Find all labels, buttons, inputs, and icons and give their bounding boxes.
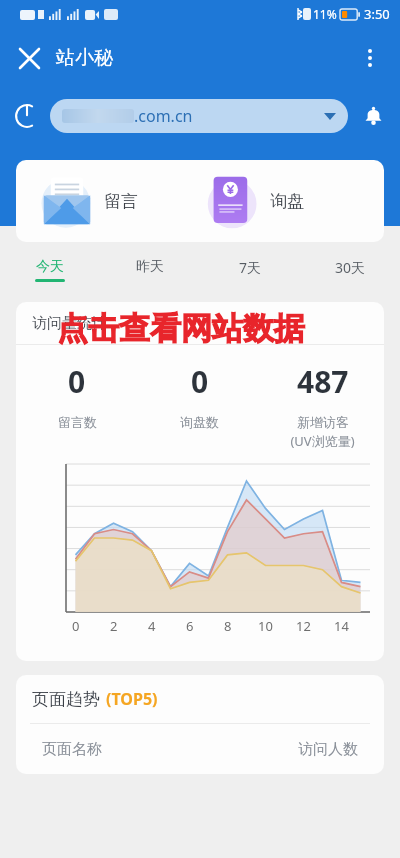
button[interactable]: Notifications [354,97,392,135]
staticText: 询盘数 [180,414,219,430]
button[interactable]: 询盘 [200,160,384,242]
button[interactable]: Close [6,35,52,81]
staticText: 2 [110,617,118,635]
staticText: 11% [313,6,337,22]
button[interactable]: 页面趋势 [16,675,384,774]
staticText: .com.cn [134,105,193,127]
staticText: 页面名称 [42,740,102,759]
button[interactable]: More options [348,36,392,80]
staticText: 今天 [36,258,64,276]
staticText: 7天 [239,258,262,277]
staticText: 页面趋势 [32,689,100,710]
staticText: 8 [224,617,232,635]
staticText: 0 [68,361,86,402]
staticText: 487 [297,361,349,402]
staticText: 访问量统计 [32,314,107,333]
staticText: 点击查看网站数据 [57,309,305,348]
staticText: 6 [186,617,194,635]
staticText: (UV浏览量) [290,432,355,450]
staticText: 0 [72,617,80,635]
button[interactable]: 访问量统计 [16,302,384,661]
button[interactable]: Power [8,97,46,135]
staticText: 询盘 [270,191,304,212]
staticText: 昨天 [136,258,164,276]
staticText: 3:50 [364,5,390,23]
staticText: 0 [191,361,209,402]
staticText: 站小秘 [56,46,113,70]
button[interactable]: .com.cn [50,99,348,133]
button[interactable]: 昨天 [100,258,200,290]
staticText: 10 [258,617,273,635]
staticText: 留言 [104,191,138,212]
staticText: 新增访客 [297,414,349,430]
staticText: 4 [148,617,156,635]
staticText: 留言数 [58,414,97,430]
button[interactable]: 7天 [200,258,300,290]
staticText: 30天 [335,258,366,277]
staticText: 14 [334,617,349,635]
staticText: 12 [296,617,311,635]
button[interactable]: 留言 [16,160,200,242]
staticText: (TOP5) [106,688,158,710]
button[interactable]: 今天 [0,258,100,290]
button[interactable]: 30天 [300,258,400,290]
staticText: 访问人数 [298,740,358,759]
